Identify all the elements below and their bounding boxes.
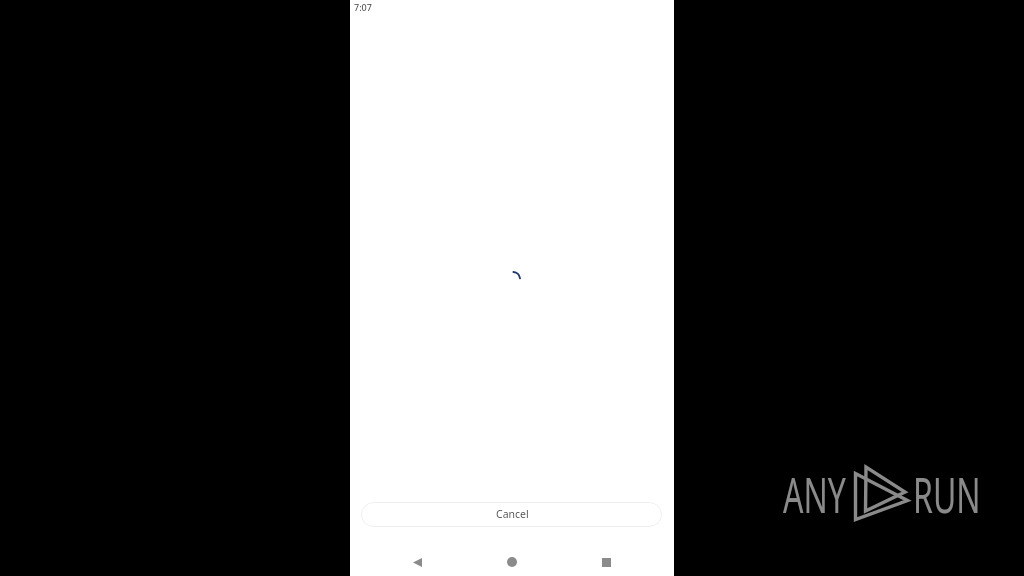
staticText: 7:07 <box>354 1 372 13</box>
staticText: RUN <box>913 460 981 528</box>
button[interactable]: Back <box>402 548 432 576</box>
button[interactable]: Recent apps <box>591 548 621 576</box>
staticText: ANY <box>783 460 846 528</box>
staticText: Cancel <box>496 507 529 521</box>
button[interactable]: Cancel <box>361 502 662 527</box>
button[interactable]: Home <box>497 548 527 576</box>
